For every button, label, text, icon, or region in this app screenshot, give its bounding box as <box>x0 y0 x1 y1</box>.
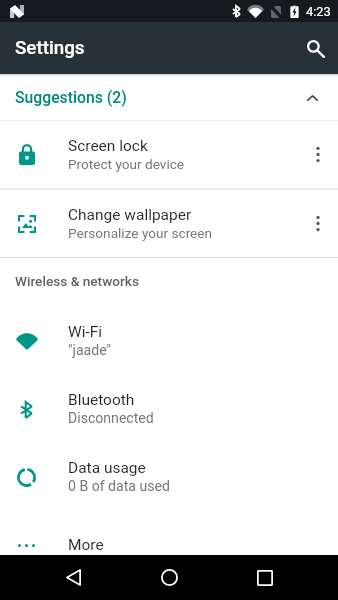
staticText: Screen lock <box>68 137 148 155</box>
staticText: 4:23 <box>306 4 331 19</box>
button[interactable]: Home <box>147 555 192 600</box>
staticText: Data usage <box>68 459 146 477</box>
staticText: Bluetooth <box>68 391 135 409</box>
staticText: Wi-Fi <box>68 323 103 341</box>
staticText: Suggestions (2) <box>15 88 127 106</box>
staticText: Settings <box>15 37 85 59</box>
button[interactable]: More options <box>297 190 338 257</box>
button[interactable]: Back <box>51 555 96 600</box>
staticText: "jaade" <box>68 342 112 359</box>
button[interactable]: Bluetooth <box>0 375 338 443</box>
button[interactable]: Suggestions (2) <box>0 74 338 120</box>
button[interactable]: Screen lock <box>0 121 338 188</box>
staticText: Protect your device <box>68 156 185 172</box>
button[interactable]: More <box>0 511 338 555</box>
button[interactable]: Recent apps <box>242 555 287 600</box>
staticText: Disconnected <box>68 410 154 427</box>
staticText: 0 B of data used <box>68 478 170 495</box>
staticText: Wireless & networks <box>15 273 139 289</box>
button[interactable]: Data usage <box>0 443 338 511</box>
button[interactable]: Search <box>293 26 338 71</box>
staticText: Personalize your screen <box>68 225 213 241</box>
button[interactable]: Collapse suggestions <box>293 75 338 120</box>
button[interactable]: More options <box>297 121 338 188</box>
staticText: Change wallpaper <box>68 206 192 224</box>
button[interactable]: Change wallpaper <box>0 190 338 257</box>
button[interactable]: Wi-Fi <box>0 307 338 375</box>
staticText: More <box>68 536 104 554</box>
